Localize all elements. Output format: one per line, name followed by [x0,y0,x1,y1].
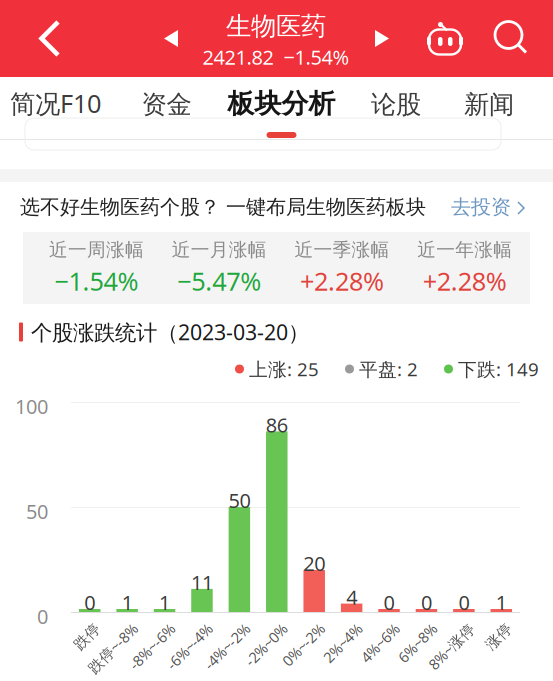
staticText: 0%~-2% [283,649,336,668]
staticText: 0 [383,589,394,616]
button[interactable]: 论股 [348,77,444,141]
button[interactable]: Previous sector [149,0,193,77]
staticText: 100 [15,393,48,420]
button[interactable]: Back [22,0,78,77]
staticText: 0 [421,589,432,616]
staticText: 20 [303,550,325,577]
staticText: −1.54% [54,264,138,298]
staticText: 11 [191,569,213,595]
staticText: 1 [122,589,133,616]
staticText: +2.28% [300,264,384,298]
staticText: 近一月涨幅 [172,238,267,261]
button[interactable]: Next sector [360,0,404,77]
staticText: 近一年涨幅 [417,238,512,261]
staticText: 板块分析 [227,87,335,120]
staticText: 上涨: 25 [249,357,319,381]
staticText: 去投资 [451,195,511,219]
button[interactable]: 板块分析 [220,77,342,141]
staticText: 下跌: 149 [458,357,539,381]
staticText: 生物医药 [226,11,326,42]
staticText: 简况F10 [10,86,101,120]
staticText: 50 [228,487,250,514]
button[interactable]: 资金 [118,77,214,141]
staticText: 个股涨跌统计（2023-03-20） [31,318,309,346]
button[interactable]: 简况F10 [1,77,109,141]
staticText: 0 [458,589,469,616]
staticText: 资金 [141,89,191,120]
staticText: -6%~-4% [165,649,223,668]
staticText: 跌停 [81,649,111,667]
staticText: 近一周涨幅 [49,238,144,261]
staticText: 1 [496,589,507,616]
staticText: -8%~-6% [128,649,186,668]
staticText: 选不好生物医药个股？ 一键布局生物医药板块 [20,195,426,219]
staticText: 论股 [371,89,421,120]
staticText: 平盘: 2 [359,357,418,381]
staticText: 新闻 [464,89,514,120]
staticText: -2%~0% [245,649,298,668]
staticText: 8%~涨停 [427,649,485,668]
button[interactable]: AI assistant [419,0,471,77]
staticText: 近一季涨幅 [294,238,389,261]
staticText: 2%~4% [325,649,373,668]
staticText: 0 [37,603,48,630]
staticText: 2421.82 −1.54% [202,44,349,70]
staticText: 0 [84,589,95,616]
button[interactable]: Search [486,0,538,77]
staticText: 50 [26,498,48,525]
staticText: +2.28% [423,264,507,298]
staticText: -4%~-2% [203,649,261,668]
staticText: 跌停~-8% [86,649,149,668]
staticText: 4 [346,584,357,610]
staticText: 6%~8% [400,649,448,668]
button[interactable]: 选不好生物医药个股？ 一键布局生物医药板块 [0,182,553,232]
staticText: 4%~6% [362,649,410,668]
staticText: 86 [266,411,288,438]
button[interactable]: 新闻 [441,77,537,141]
staticText: −5.47% [177,264,261,298]
staticText: 1 [159,589,170,616]
